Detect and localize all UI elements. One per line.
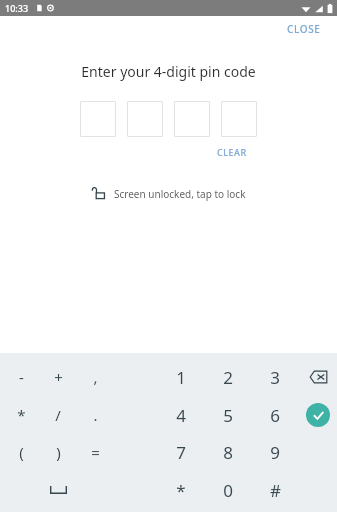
button[interactable]: 2	[210, 361, 246, 393]
staticText: 4	[176, 404, 186, 427]
staticText: ,	[93, 367, 98, 387]
staticText: 8	[223, 441, 233, 464]
staticText: Enter your 4-digit pin code	[0, 62, 337, 81]
button[interactable]: .	[77, 399, 113, 431]
button[interactable]: (	[3, 436, 39, 468]
button[interactable]: CLOSE	[271, 16, 337, 42]
button[interactable]: *	[163, 474, 199, 506]
button[interactable]: 7	[163, 436, 199, 468]
staticText: 7	[176, 441, 186, 464]
button[interactable]	[127, 101, 163, 137]
button[interactable]: Space	[40, 476, 76, 504]
button[interactable]	[80, 101, 116, 137]
staticText: CLEAR	[217, 146, 247, 158]
staticText: 5	[223, 404, 233, 427]
staticText: *	[176, 479, 186, 502]
staticText: /	[55, 405, 61, 425]
staticText: Screen unlocked, tap to lock	[114, 187, 246, 201]
button[interactable]: #	[257, 474, 293, 506]
button[interactable]	[174, 101, 210, 137]
staticText: 9	[270, 441, 280, 464]
button[interactable]: ,	[77, 361, 113, 393]
button[interactable]: 9	[257, 436, 293, 468]
staticText: 1	[176, 366, 186, 389]
staticText: -	[19, 367, 24, 387]
button[interactable]: 5	[210, 399, 246, 431]
button[interactable]: 8	[210, 436, 246, 468]
button[interactable]: CLEAR	[213, 144, 251, 160]
button[interactable]: 1	[163, 361, 199, 393]
staticText: .	[93, 405, 98, 425]
staticText: *	[17, 405, 26, 425]
button[interactable]: =	[77, 436, 113, 468]
staticText: 6	[270, 404, 280, 427]
staticText: 0	[223, 479, 233, 502]
staticText: CLOSE	[287, 22, 321, 36]
button[interactable]: 0	[210, 474, 246, 506]
button[interactable]: +	[40, 361, 76, 393]
staticText: )	[56, 442, 61, 462]
staticText: 10:33	[5, 2, 29, 14]
button[interactable]: )	[40, 436, 76, 468]
button[interactable]: *	[3, 399, 39, 431]
staticText: (	[19, 442, 24, 462]
button[interactable]: Backspace	[300, 361, 336, 393]
staticText: =	[91, 442, 100, 462]
staticText: #	[270, 479, 281, 502]
button[interactable]	[221, 101, 257, 137]
button[interactable]: Lock screen	[88, 183, 250, 204]
staticText: 2	[223, 366, 233, 389]
button[interactable]: 3	[257, 361, 293, 393]
staticText: 3	[270, 366, 280, 389]
button[interactable]: Confirm	[300, 397, 336, 433]
button[interactable]: 4	[163, 399, 199, 431]
other: Lock screen	[92, 186, 107, 201]
button[interactable]: /	[40, 399, 76, 431]
button[interactable]: 6	[257, 399, 293, 431]
button[interactable]: -	[3, 361, 39, 393]
staticText: +	[54, 367, 63, 387]
